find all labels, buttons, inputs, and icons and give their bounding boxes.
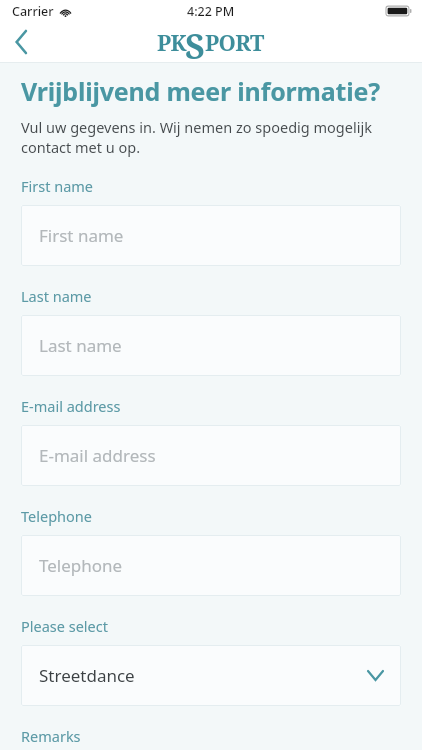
button[interactable]: Back bbox=[0, 22, 44, 62]
staticText: Last name bbox=[21, 286, 92, 306]
staticText: Please select bbox=[21, 616, 108, 636]
button[interactable]: First name bbox=[21, 205, 401, 266]
staticText: S bbox=[185, 23, 205, 63]
staticText: Telephone bbox=[21, 506, 92, 526]
button[interactable]: E-mail address bbox=[21, 425, 401, 486]
staticText: Streetdance bbox=[39, 664, 135, 687]
staticText: Remarks bbox=[21, 726, 81, 746]
button[interactable]: Telephone bbox=[21, 535, 401, 596]
staticText: 4:22 PM bbox=[187, 3, 235, 20]
staticText: E-mail address bbox=[21, 396, 121, 416]
button[interactable]: Last name bbox=[21, 315, 401, 376]
staticText: Vrijblijvend meer informatie? bbox=[21, 74, 380, 108]
staticText: Carrier bbox=[12, 3, 54, 20]
staticText: Last name bbox=[39, 334, 122, 357]
staticText: E-mail address bbox=[39, 444, 156, 467]
staticText: Telephone bbox=[39, 554, 123, 577]
button[interactable]: Streetdance bbox=[21, 645, 401, 706]
staticText: First name bbox=[21, 176, 94, 196]
staticText: First name bbox=[39, 224, 124, 247]
staticText: Vul uw gegevens in. Wij nemen zo spoedig… bbox=[21, 117, 401, 158]
staticText: PORT bbox=[205, 27, 264, 57]
staticText: PK bbox=[157, 27, 187, 57]
